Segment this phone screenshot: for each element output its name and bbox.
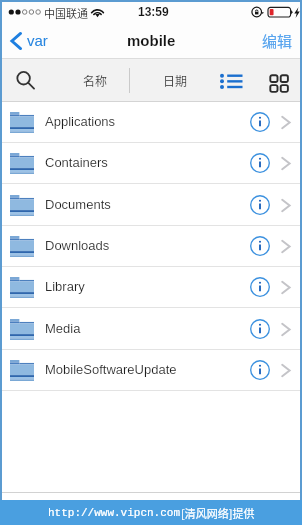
button[interactable]: var: [2, 22, 52, 59]
staticText: MobileSoftwareUpdate: [45, 362, 177, 377]
button[interactable]: 日期: [153, 59, 197, 102]
staticText: 名称: [83, 72, 108, 89]
staticText: Library: [45, 279, 85, 294]
button[interactable]: Library: [2, 267, 300, 308]
button[interactable]: 名称: [73, 59, 117, 102]
staticText: 13:59: [138, 5, 169, 18]
staticText: Media: [45, 321, 81, 336]
staticText: 日期: [163, 72, 188, 89]
staticText: Containers: [45, 155, 108, 170]
button[interactable]: Info: [246, 267, 274, 307]
button[interactable]: Info: [246, 143, 274, 183]
button[interactable]: Grid view: [258, 59, 302, 102]
button[interactable]: Applications: [2, 102, 300, 143]
button[interactable]: Info: [246, 350, 274, 390]
button[interactable]: Info: [246, 185, 274, 225]
button[interactable]: 编辑: [252, 22, 300, 59]
button[interactable]: Info: [246, 309, 274, 349]
button[interactable]: Media: [2, 309, 300, 350]
staticText: [清风网络]提供: [181, 505, 255, 521]
button[interactable]: Downloads: [2, 226, 300, 267]
staticText: http://www.vipcn.com: [48, 507, 181, 519]
staticText: var: [27, 32, 48, 49]
staticText: mobile: [127, 32, 176, 49]
staticText: Documents: [45, 197, 111, 212]
button[interactable]: Containers: [2, 143, 300, 184]
button[interactable]: MobileSoftwareUpdate: [2, 350, 300, 391]
button[interactable]: Search: [7, 59, 43, 102]
staticText: 编辑: [262, 30, 293, 52]
staticText: Applications: [45, 114, 116, 129]
button[interactable]: Info: [246, 226, 274, 266]
staticText: Downloads: [45, 238, 110, 253]
button[interactable]: List view: [211, 59, 255, 102]
button[interactable]: Info: [246, 102, 274, 142]
staticText: 中国联通: [44, 5, 88, 21]
button[interactable]: Documents: [2, 185, 300, 226]
